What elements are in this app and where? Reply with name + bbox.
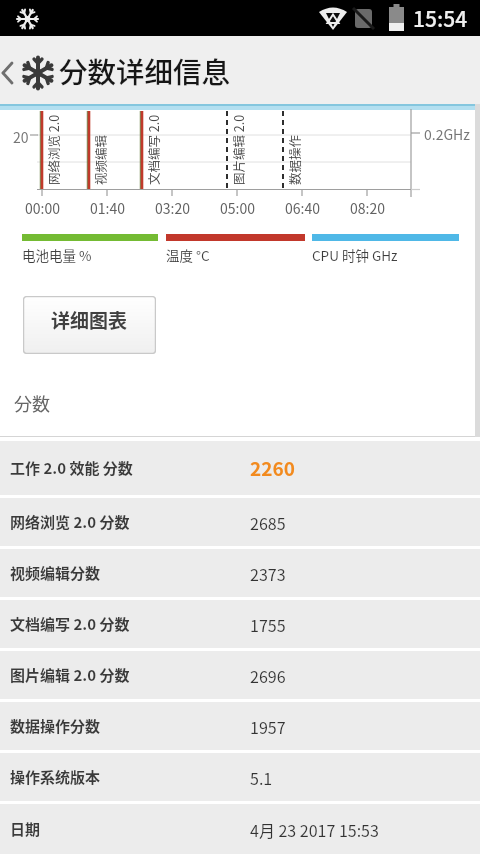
staticText: 01:40: [90, 198, 125, 218]
button[interactable]: 视频编辑分数: [0, 549, 480, 597]
staticText: 日期: [10, 818, 41, 840]
staticText: 0.2GHz: [424, 124, 470, 144]
staticText: 电池电量 %: [22, 245, 92, 265]
staticText: 工作 2.0 效能 分数: [10, 457, 133, 479]
staticText: 03:20: [155, 198, 190, 218]
button[interactable]: 操作系统版本: [0, 753, 480, 801]
staticText: 2373: [250, 562, 286, 585]
staticText: 2685: [250, 511, 286, 534]
staticText: CPU 时钟 GHz: [312, 245, 398, 265]
staticText: 06:40: [285, 198, 320, 218]
staticText: 1957: [250, 715, 286, 738]
button[interactable]: 工作 2.0 效能 分数: [0, 441, 480, 495]
staticText: 文档编写 2.0 分数: [10, 613, 130, 635]
staticText: 4月 23 2017 15:53: [250, 818, 379, 841]
staticText: 15:54: [413, 3, 468, 33]
staticText: 操作系统版本: [10, 766, 101, 788]
staticText: 数据操作分数: [10, 715, 101, 737]
staticText: 分数: [14, 390, 50, 416]
staticText: 2696: [250, 664, 286, 687]
staticText: 详细图表: [51, 306, 128, 334]
staticText: 5.1: [250, 766, 273, 789]
staticText: 05:00: [220, 198, 255, 218]
button[interactable]: 网络浏览 2.0 分数: [0, 498, 480, 546]
staticText: 1755: [250, 613, 286, 636]
staticText: 08:20: [350, 198, 385, 218]
staticText: 00:00: [25, 198, 60, 218]
staticText: 分数详细信息: [59, 50, 231, 91]
button[interactable]: 图片编辑 2.0 分数: [0, 651, 480, 699]
staticText: 网络浏览 2.0 分数: [10, 511, 130, 533]
staticText: 温度 °C: [166, 245, 210, 265]
button[interactable]: 日期: [0, 804, 480, 854]
staticText: 图片编辑 2.0 分数: [10, 664, 130, 686]
staticText: 2260: [250, 454, 295, 482]
button[interactable]: 数据操作分数: [0, 702, 480, 750]
staticText: 20: [13, 127, 29, 147]
button[interactable]: 详细图表: [23, 296, 156, 354]
button[interactable]: 文档编写 2.0 分数: [0, 600, 480, 648]
staticText: 视频编辑分数: [10, 562, 101, 584]
